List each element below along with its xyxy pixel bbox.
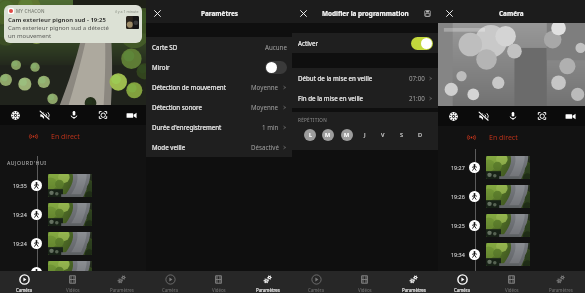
button[interactable]: L <box>304 129 316 141</box>
staticText: S <box>400 131 404 139</box>
button[interactable]: J <box>359 129 371 141</box>
staticText: Détection de mouvement <box>152 83 226 91</box>
button[interactable]: 19:2 <box>0 258 146 287</box>
staticText: Miroir <box>152 63 170 71</box>
staticText: AUJOURD'HUI <box>7 159 47 166</box>
button[interactable]: Fin de la mise en veille <box>292 88 438 108</box>
staticText: En direct <box>489 133 518 143</box>
button[interactable]: Vidéos <box>340 271 389 293</box>
button[interactable]: Caméra <box>0 271 48 293</box>
staticText: D <box>418 131 423 139</box>
button[interactable]: Détection de mouvement <box>146 77 292 97</box>
button[interactable]: V <box>377 129 389 141</box>
button[interactable]: Caméra <box>146 271 194 293</box>
button[interactable]: Close <box>149 5 165 21</box>
staticText: 1 min <box>262 123 279 131</box>
button[interactable]: Mute <box>30 105 59 125</box>
button[interactable]: Caméra <box>438 271 487 293</box>
staticText: Carte SD <box>152 43 178 51</box>
staticText: Paramètres <box>402 287 426 293</box>
button[interactable]: D <box>414 129 426 141</box>
staticText: Vidéos <box>212 287 226 293</box>
staticText: Détection sonore <box>152 103 202 111</box>
button[interactable]: Vidéos <box>194 271 243 293</box>
button[interactable]: Snapshot <box>527 106 556 126</box>
button[interactable]: Snapshot <box>88 105 117 125</box>
button[interactable]: Record <box>117 105 146 125</box>
button[interactable]: Début de la mise en veille <box>292 68 438 88</box>
staticText: 21:00 <box>409 94 425 102</box>
button[interactable]: Close <box>295 5 311 21</box>
button[interactable]: Caméra <box>292 271 340 293</box>
staticText: Paramètres <box>110 287 134 293</box>
button[interactable]: 19:24 <box>0 200 146 229</box>
button[interactable] <box>411 37 433 50</box>
staticText: Début de la mise en veille <box>298 74 373 82</box>
button[interactable]: En direct <box>0 125 146 148</box>
staticText: Vidéos <box>66 287 80 293</box>
button[interactable]: Mode veille <box>146 137 292 157</box>
staticText: Caméra <box>499 9 524 18</box>
staticText: 07:00 <box>409 74 425 82</box>
staticText: Paramètres <box>549 287 573 293</box>
button[interactable]: 19:25 <box>438 211 585 240</box>
staticText: Durée d'enregistrement <box>152 123 222 131</box>
button[interactable]: Microphone <box>498 106 527 126</box>
button[interactable]: Miroir <box>146 57 292 77</box>
button[interactable]: M <box>322 129 334 141</box>
staticText: RÉPÉTITION <box>298 117 328 123</box>
button[interactable]: Microphone <box>59 105 88 125</box>
staticText: Fin de la mise en veille <box>298 94 364 102</box>
staticText: Vidéos <box>358 287 372 293</box>
staticText: M <box>344 131 350 139</box>
button[interactable]: MY CHACON <box>4 5 142 43</box>
staticText: 19:35 <box>13 182 27 189</box>
staticText: un mouvement <box>8 32 52 40</box>
staticText: Caméra <box>454 287 471 293</box>
staticText: 19:34 <box>451 251 465 258</box>
staticText: Caméra <box>16 287 33 293</box>
staticText: 19:24 <box>13 211 27 218</box>
staticText: il y a 1 minute <box>115 9 139 14</box>
button[interactable]: Paramètres <box>389 271 438 293</box>
button[interactable]: Paramètres <box>97 271 146 293</box>
staticText: 19:27 <box>451 164 465 171</box>
button[interactable]: Record <box>556 106 585 126</box>
button[interactable]: Vidéos <box>48 271 97 293</box>
button[interactable]: 19:34 <box>438 240 585 269</box>
staticText: Moyenne <box>251 83 279 91</box>
button[interactable]: M <box>341 129 353 141</box>
button[interactable]: Brightness <box>0 105 30 125</box>
button[interactable]: Durée d'enregistrement <box>146 117 292 137</box>
button[interactable]: Save <box>419 5 435 21</box>
staticText: Caméra <box>308 287 325 293</box>
staticText: Cam exterieur pignon sud a détecté <box>8 24 109 32</box>
staticText: V <box>381 131 385 139</box>
button[interactable]: Activer <box>292 33 438 53</box>
button[interactable]: 19:26 <box>438 182 585 211</box>
button[interactable]: En direct <box>438 126 585 149</box>
button[interactable]: Paramètres <box>243 271 292 293</box>
staticText: 19:25 <box>451 222 465 229</box>
button[interactable]: 19:24 <box>0 229 146 258</box>
button[interactable]: 19:27 <box>438 153 585 182</box>
button[interactable] <box>265 61 287 74</box>
button[interactable]: Détection sonore <box>146 97 292 117</box>
button[interactable]: Brightness <box>438 106 468 126</box>
staticText: Mode veille <box>152 143 186 151</box>
staticText: L <box>309 131 312 139</box>
staticText: Activer <box>298 39 318 47</box>
button[interactable]: Carte SD <box>146 37 292 57</box>
staticText: 19:24 <box>13 240 27 247</box>
staticText: 19:26 <box>451 193 465 200</box>
button[interactable]: Vidéos <box>487 271 536 293</box>
staticText: Désactivé <box>251 143 279 151</box>
button[interactable]: 19:35 <box>0 171 146 200</box>
button[interactable]: Paramètres <box>536 271 585 293</box>
staticText: Vidéos <box>505 287 519 293</box>
staticText: MY CHACON <box>16 8 45 14</box>
button[interactable]: Close <box>441 5 457 21</box>
button[interactable]: Mute <box>468 106 498 126</box>
button[interactable]: S <box>396 129 408 141</box>
staticText: Caméra <box>162 287 179 293</box>
